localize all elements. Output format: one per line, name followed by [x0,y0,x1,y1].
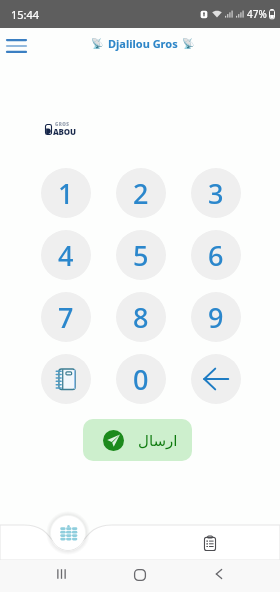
staticText: 5 [133,237,149,274]
button[interactable]: Back [213,568,225,580]
button[interactable]: 4 [41,230,91,280]
staticText: 7 [58,299,74,336]
button[interactable]: 7 [41,292,91,342]
button[interactable]: 9 [191,292,241,342]
staticText: 📡 [91,38,104,50]
button[interactable]: Home [134,569,146,581]
button[interactable]: Dabou Gros logo [45,121,76,137]
staticText: 0 [133,361,149,398]
button[interactable]: Menu [2,32,30,60]
staticText: 2 [133,175,149,212]
staticText: 15:44 [11,7,40,22]
staticText: ارسال [138,432,178,449]
button[interactable]: Dialpad [51,516,85,550]
button[interactable]: Contacts [41,354,91,404]
button[interactable]: 3 [191,168,241,218]
staticText: 6 [208,237,224,274]
staticText: 3 [208,175,224,212]
staticText: 📡 [182,38,195,50]
staticText: GROS [55,121,70,127]
button[interactable]: Recent apps [55,568,68,580]
button[interactable]: 8 [116,292,166,342]
staticText: Djalilou Gros [108,36,178,51]
button[interactable]: 6 [191,230,241,280]
staticText: ABOU [53,126,76,136]
staticText: 9 [208,299,224,336]
button[interactable]: 0 [116,354,166,404]
button[interactable]: ارسال [83,419,192,461]
staticText: 4 [58,237,74,274]
staticText: 8 [133,299,149,336]
button[interactable]: 2 [116,168,166,218]
button[interactable]: 1 [41,168,91,218]
button[interactable]: 5 [116,230,166,280]
button[interactable]: History [198,532,221,555]
staticText: 1 [58,175,74,212]
button[interactable]: Backspace [191,354,241,404]
staticText: 47% [247,7,267,21]
